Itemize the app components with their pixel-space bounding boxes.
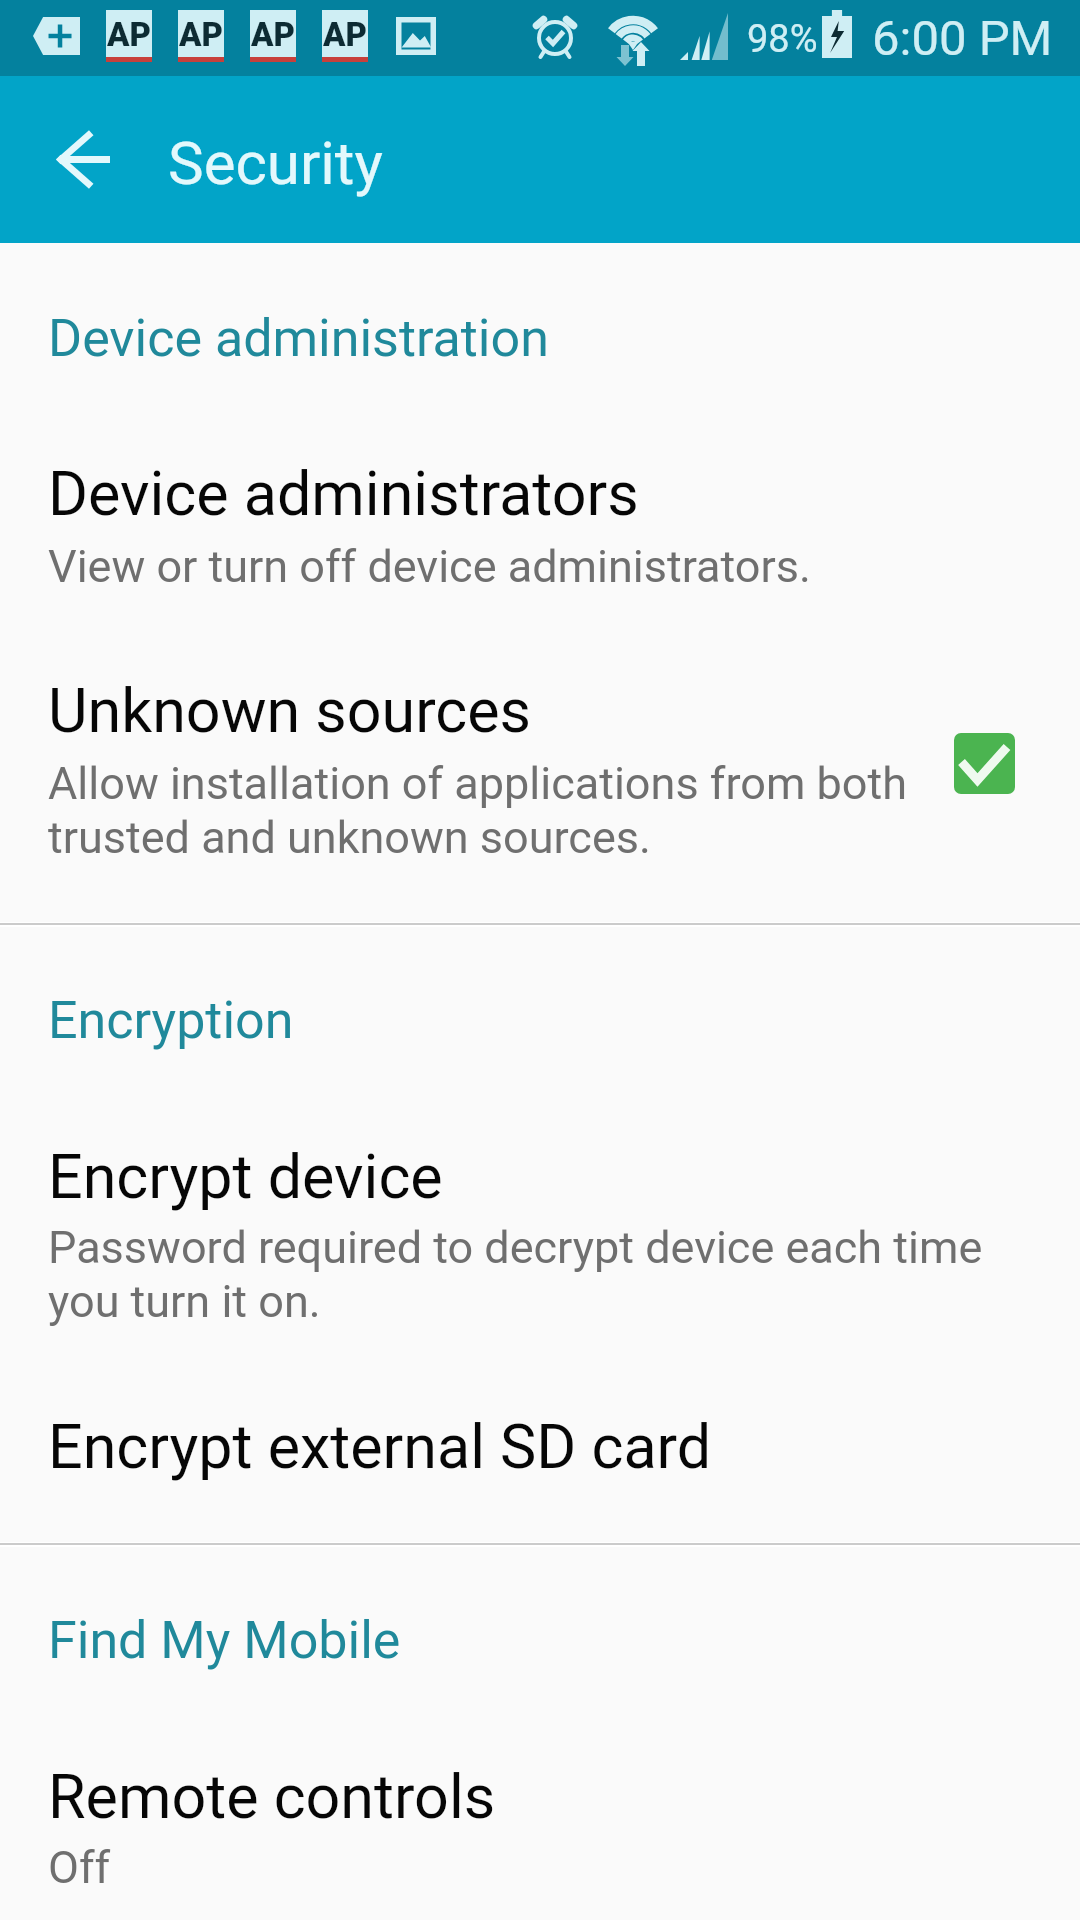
staticText: Password required to decrypt device each… bbox=[48, 1220, 1032, 1328]
staticText: Encrypt external SD card bbox=[48, 1411, 712, 1482]
staticText: AP bbox=[323, 15, 367, 54]
staticText: 98% bbox=[747, 17, 818, 62]
button[interactable]: Remote controls bbox=[0, 1725, 1080, 1895]
staticText: Allow installation of applications from … bbox=[48, 756, 948, 864]
staticText: AP bbox=[251, 15, 295, 54]
button[interactable]: Encrypt device bbox=[0, 1105, 1080, 1305]
button[interactable]: Encrypt external SD card bbox=[0, 1375, 1080, 1505]
staticText: Unknown sources bbox=[48, 675, 532, 746]
staticText: Encrypt device bbox=[48, 1141, 443, 1212]
staticText: Remote controls bbox=[48, 1761, 496, 1832]
staticText: Encryption bbox=[48, 990, 294, 1051]
staticText: Device administration bbox=[48, 308, 549, 369]
button[interactable]: Unknown sources, checked bbox=[954, 733, 1015, 794]
button[interactable]: Device administrators bbox=[0, 420, 1080, 590]
staticText: Find My Mobile bbox=[48, 1610, 401, 1671]
staticText: AP bbox=[107, 15, 151, 54]
button[interactable]: Navigate up bbox=[0, 76, 167, 243]
staticText: View or turn off device administrators. bbox=[48, 539, 1032, 593]
button[interactable]: Unknown sources bbox=[0, 640, 1080, 875]
staticText: AP bbox=[179, 15, 223, 54]
staticText: Off bbox=[48, 1840, 348, 1894]
staticText: Device administrators bbox=[48, 458, 639, 529]
staticText: Security bbox=[168, 128, 383, 198]
staticText: 6:00 PM bbox=[872, 10, 1053, 67]
